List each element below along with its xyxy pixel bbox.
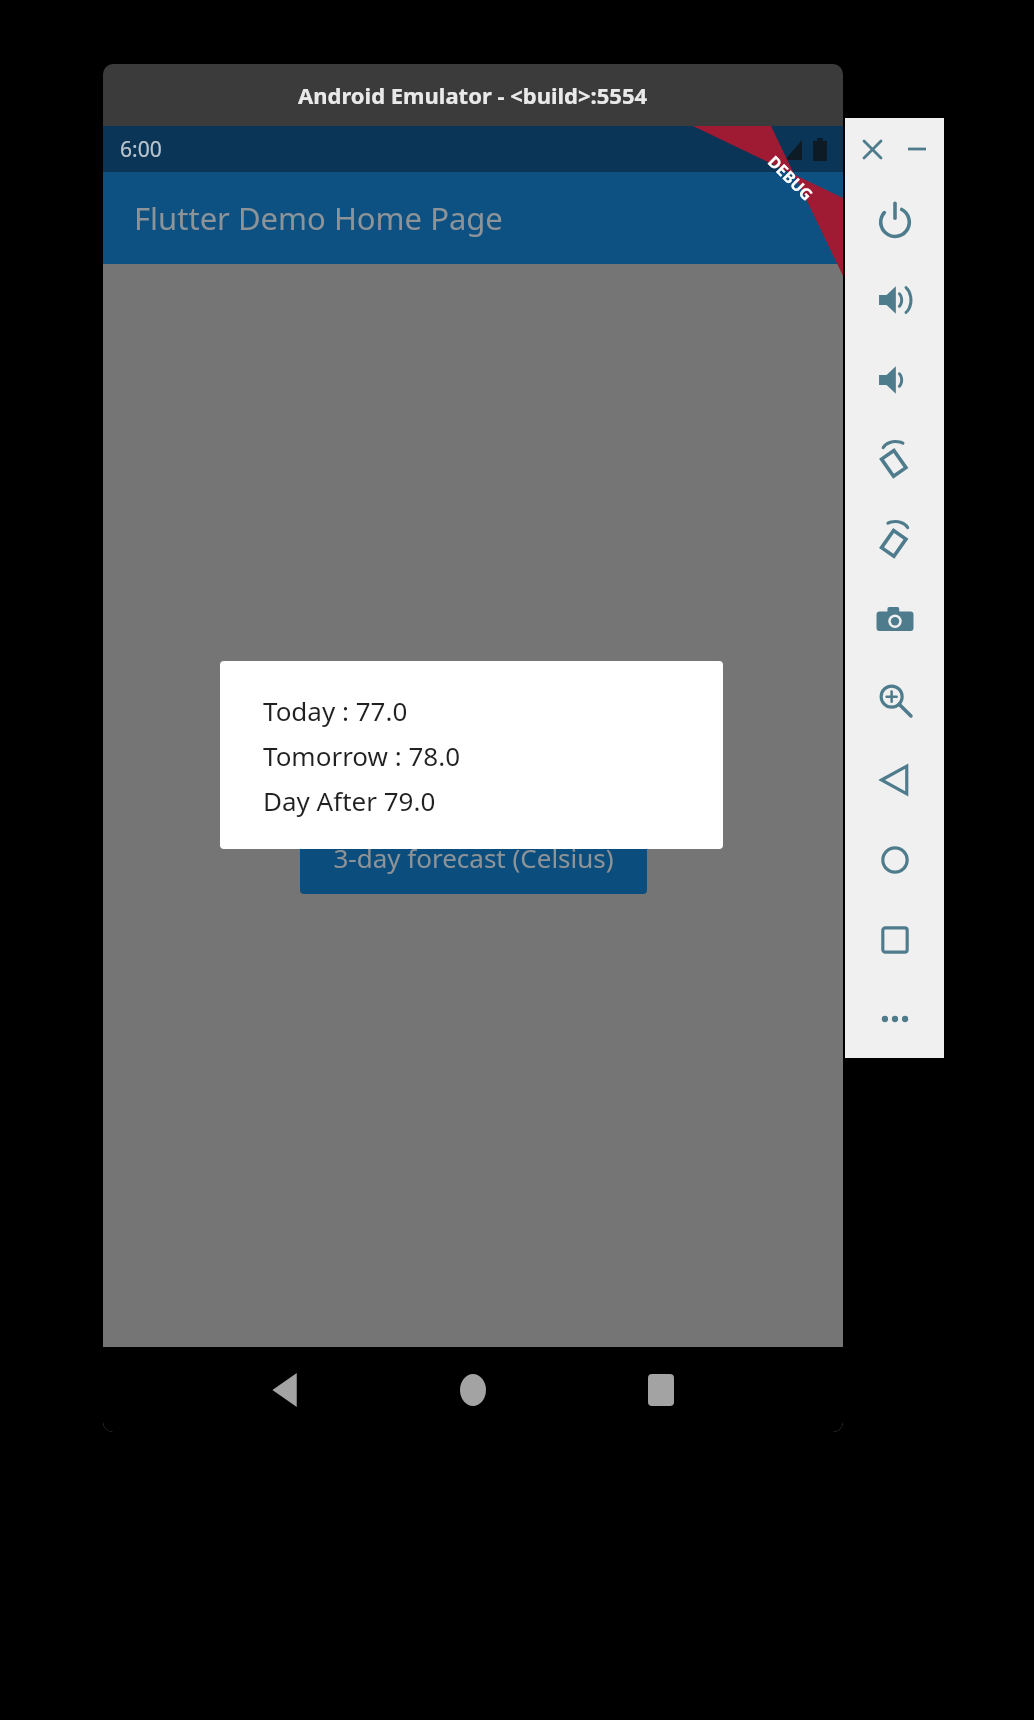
- button[interactable]: Back: [249, 1354, 321, 1426]
- button[interactable]: Recent apps: [625, 1354, 697, 1426]
- button[interactable]: Rotate left: [845, 420, 944, 500]
- button[interactable]: More options: [845, 980, 944, 1058]
- button[interactable]: Home: [845, 820, 944, 900]
- button[interactable]: Minimize: [899, 131, 935, 167]
- button[interactable]: 3-day forecast (Fahrenheit): [277, 717, 670, 790]
- button[interactable]: Close: [854, 131, 890, 167]
- staticText: Android Emulator - <build>:5554: [298, 80, 648, 110]
- button[interactable]: Rotate right: [845, 500, 944, 580]
- button[interactable]: Volume up: [845, 260, 944, 340]
- staticText: 3-day forecast (Fahrenheit): [310, 736, 637, 771]
- staticText: 3-day forecast (Celsius): [333, 840, 614, 875]
- staticText: Day After 79.0: [263, 783, 436, 818]
- staticText: Tomorrow : 78.0: [263, 738, 461, 773]
- button[interactable]: Back: [845, 740, 944, 820]
- button[interactable]: 3-day forecast (Celsius): [300, 821, 647, 894]
- button[interactable]: Home: [437, 1354, 509, 1426]
- staticText: DEBUG: [763, 151, 818, 205]
- button[interactable]: Today : 77.0: [220, 661, 723, 849]
- button[interactable]: Volume down: [845, 340, 944, 420]
- staticText: Flutter Demo Home Page: [134, 197, 503, 239]
- button[interactable]: Zoom: [845, 660, 944, 740]
- button[interactable]: Overview: [845, 900, 944, 980]
- button[interactable]: Power: [845, 180, 944, 260]
- staticText: Today : 77.0: [263, 693, 408, 728]
- button[interactable]: Take screenshot: [845, 580, 944, 660]
- staticText: 6:00: [120, 135, 162, 164]
